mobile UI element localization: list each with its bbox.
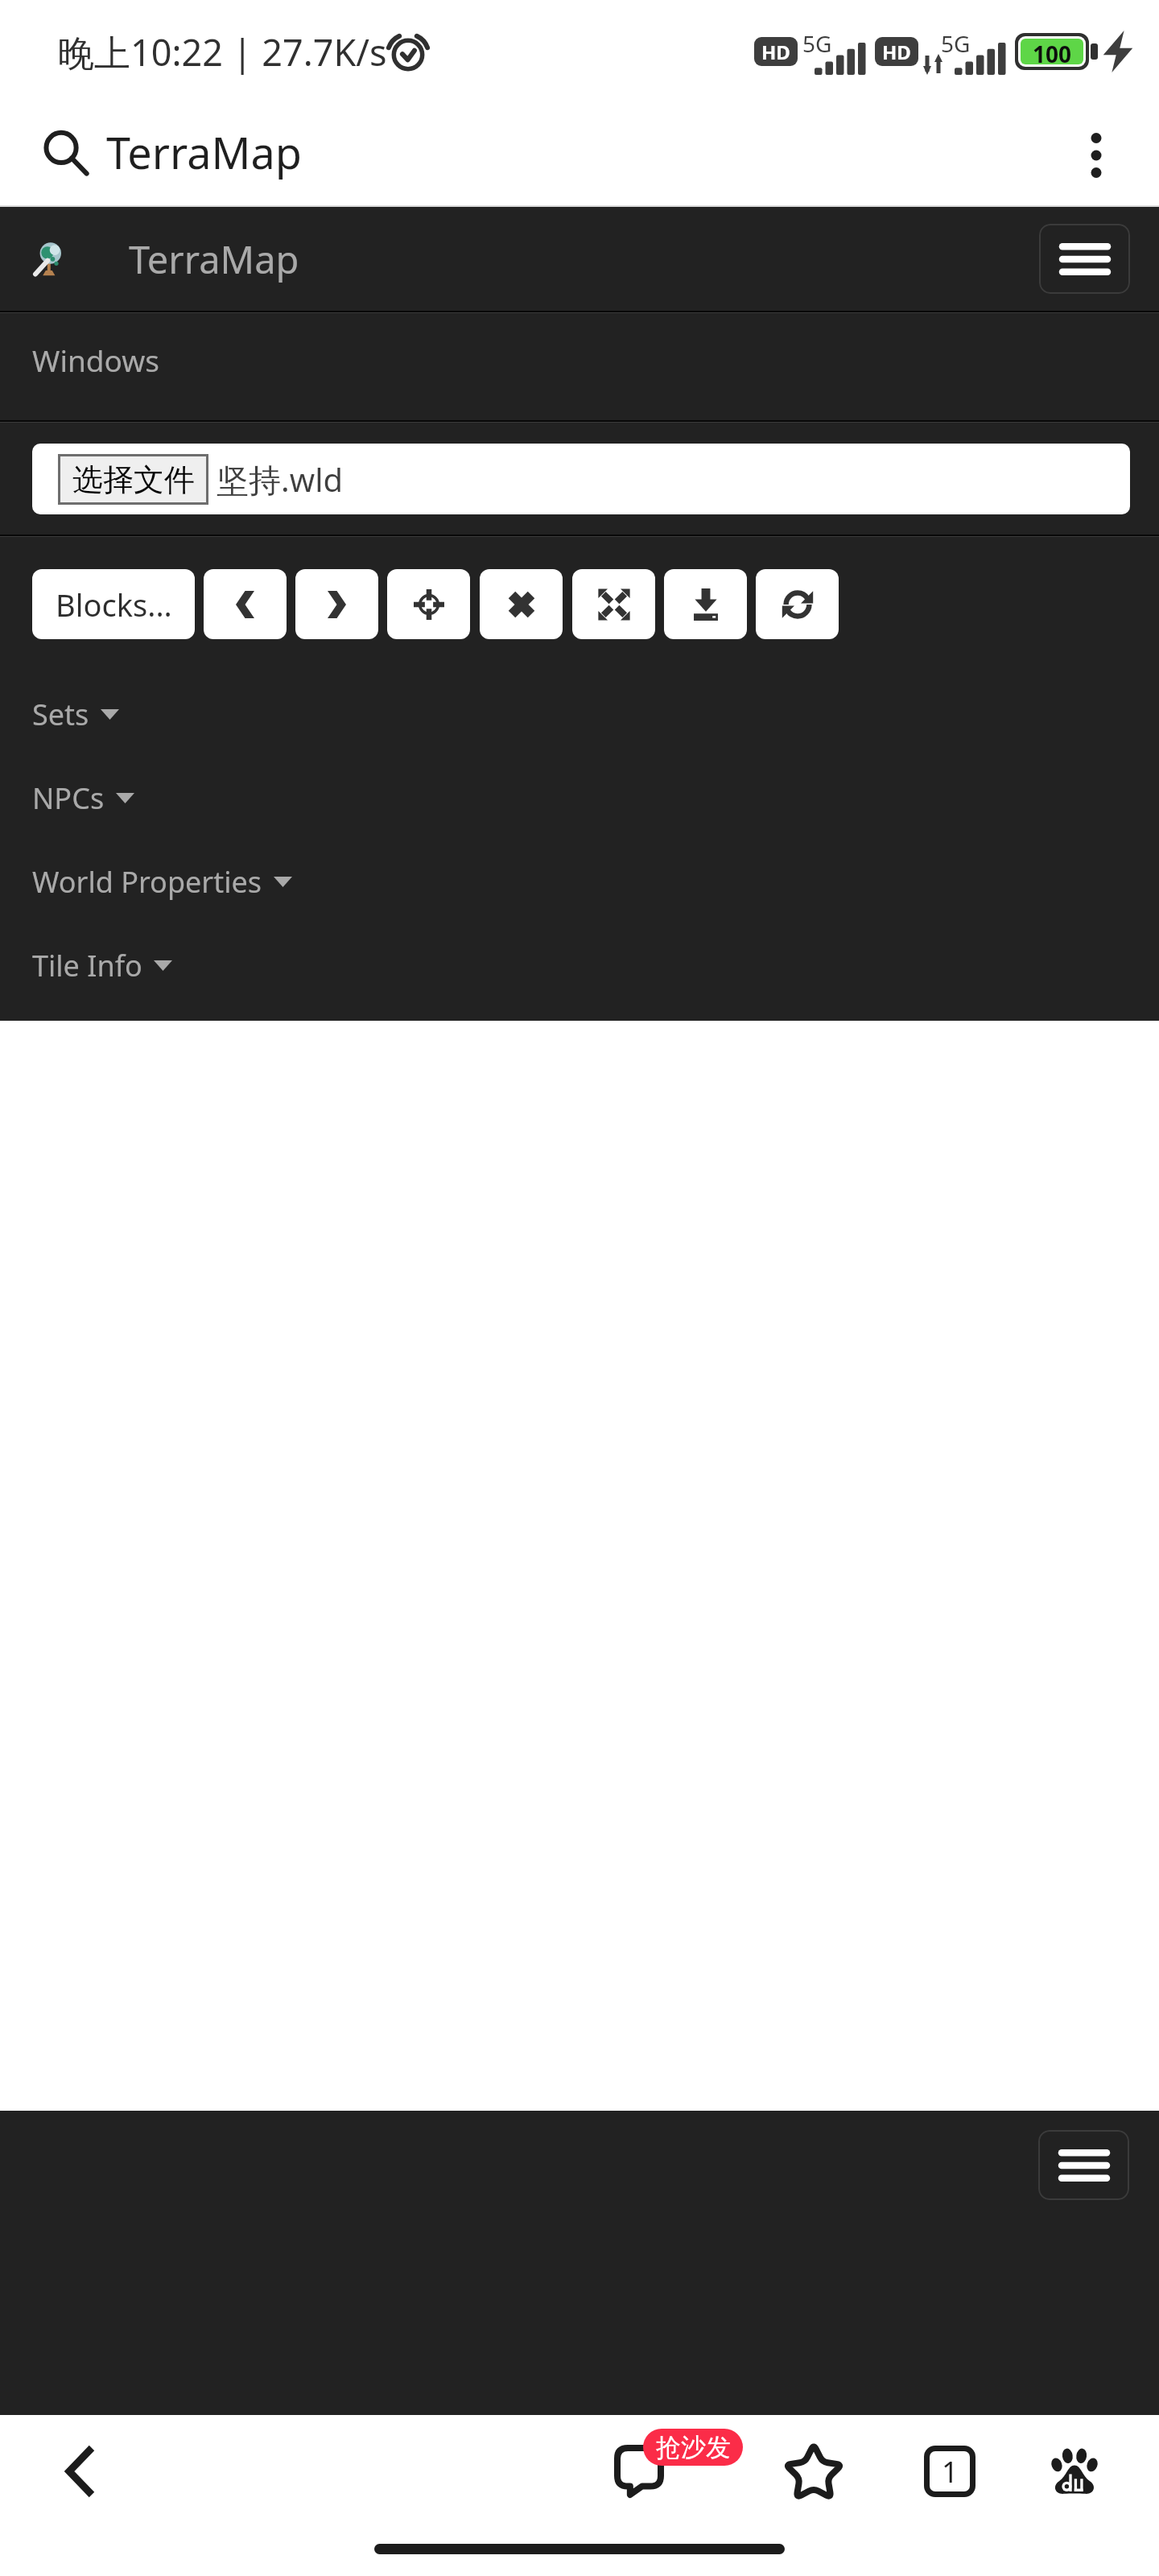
staticText: HD [882, 39, 911, 65]
button[interactable]: Toggle navigation [1039, 224, 1130, 294]
staticText: Windows [32, 340, 160, 380]
staticText: TerraMap [129, 233, 299, 285]
button[interactable]: Save [664, 569, 747, 639]
button[interactable]: Refresh [756, 569, 839, 639]
staticText: 抢沙发 [656, 2432, 731, 2463]
staticText: World Properties [32, 862, 262, 902]
button[interactable]: NPCs [0, 756, 1159, 840]
button[interactable]: Blocks... [32, 569, 195, 639]
button[interactable]: Close [480, 569, 563, 639]
staticText: 晚上10:22 | 27.7K/s [58, 27, 387, 76]
button[interactable]: Back [32, 2423, 129, 2520]
button[interactable]: World Properties [0, 840, 1159, 923]
button[interactable]: More options [1062, 103, 1130, 207]
staticText: TerraMap [106, 122, 302, 182]
staticText: Sets [32, 695, 89, 734]
button[interactable]: Center map [387, 569, 470, 639]
staticText: 1 [942, 2452, 959, 2491]
staticText: Tile Info [32, 946, 142, 985]
staticText: HD [761, 39, 790, 65]
staticText: 5G [941, 28, 971, 59]
staticText: NPCs [32, 778, 105, 818]
button[interactable]: Windows [0, 313, 1159, 420]
staticText: 5G [802, 28, 832, 59]
button[interactable]: Toggle navigation [1038, 2130, 1129, 2200]
button[interactable]: Baidu home [1026, 2423, 1123, 2520]
staticText: 选择文件 [72, 460, 195, 499]
staticText: Blocks... [56, 584, 172, 625]
button[interactable]: Fullscreen [572, 569, 655, 639]
staticText: 坚持.wld [217, 457, 344, 502]
button[interactable]: Tile Info [0, 923, 1159, 1007]
staticText: 100 [1033, 39, 1072, 64]
button[interactable]: TerraMap [40, 100, 1062, 204]
button[interactable]: 选择文件 [32, 444, 1130, 514]
button[interactable]: Tabs [901, 2423, 998, 2520]
button[interactable]: Sets [0, 672, 1159, 756]
button[interactable]: Next [295, 569, 378, 639]
button[interactable]: Comments [591, 2423, 687, 2520]
button[interactable]: Previous [204, 569, 287, 639]
button[interactable]: Bookmark [765, 2423, 862, 2520]
